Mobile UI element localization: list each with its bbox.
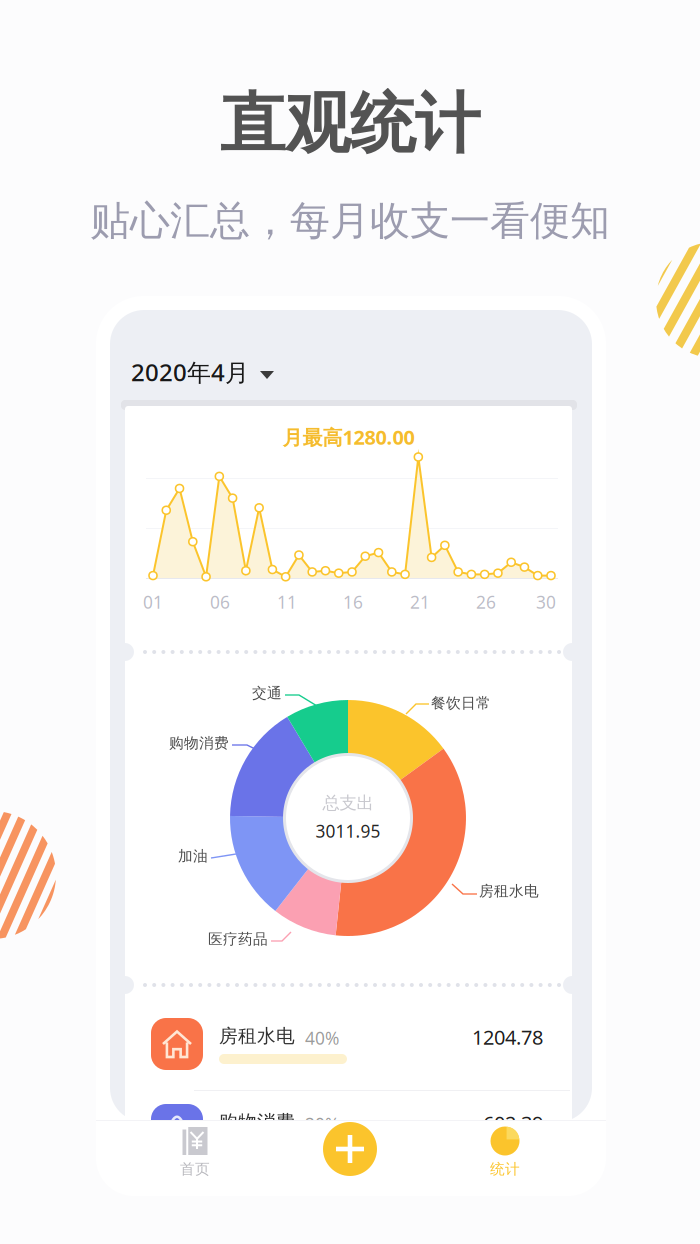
button[interactable]: 首页 [125, 1121, 265, 1193]
staticText: 医疗药品 [208, 930, 268, 948]
staticText: 首页 [180, 1160, 210, 1178]
button[interactable]: 2020年4月 [131, 348, 321, 396]
staticText: 统计 [490, 1160, 520, 1178]
staticText: 直观统计 [220, 84, 480, 164]
staticText: 11 [277, 590, 297, 613]
button[interactable]: 统计 [435, 1121, 575, 1193]
button[interactable]: 购物消费 [125, 1093, 572, 1190]
staticText: 2020年4月 [131, 356, 249, 388]
staticText: 602.39 [483, 1110, 543, 1136]
staticText: 40% [305, 1026, 339, 1049]
staticText: 交通 [252, 684, 282, 702]
button[interactable]: Add record [323, 1122, 377, 1176]
button[interactable]: 房租水电 [125, 1007, 572, 1104]
staticText: 16 [343, 590, 363, 613]
staticText: 21 [410, 590, 430, 613]
staticText: 总支出 [322, 792, 373, 814]
staticText: 3011.95 [315, 819, 380, 842]
staticText: 26 [476, 590, 496, 613]
staticText: 01 [143, 590, 163, 613]
staticText: 30 [536, 590, 556, 613]
staticText: 20% [305, 1112, 339, 1135]
staticText: 加油 [178, 847, 208, 865]
staticText: 房租水电 [219, 1024, 295, 1047]
staticText: 购物消费 [169, 734, 229, 752]
staticText: 06 [210, 590, 230, 613]
staticText: 月最高1280.00 [282, 424, 414, 450]
staticText: 餐饮日常 [431, 694, 491, 712]
staticText: 购物消费 [219, 1110, 295, 1133]
staticText: 1204.78 [472, 1024, 543, 1050]
staticText: 贴心汇总，每月收支一看便知 [90, 196, 610, 245]
staticText: 房租水电 [479, 882, 539, 900]
